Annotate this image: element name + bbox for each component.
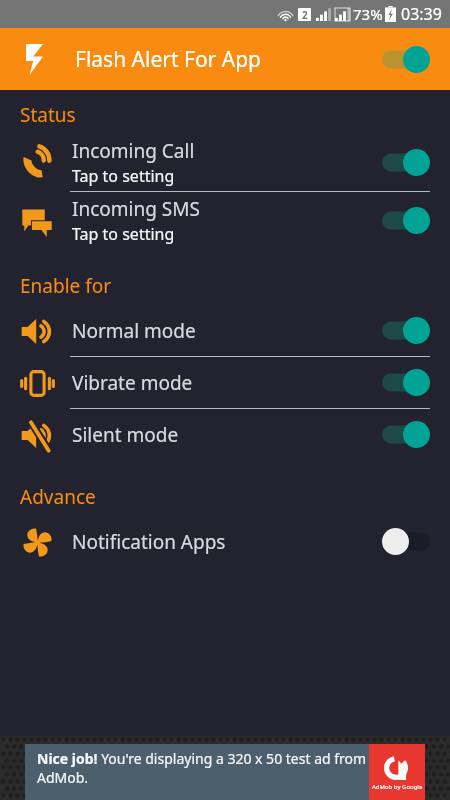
button[interactable]: Silent mode toggle [376, 413, 436, 456]
button[interactable]: Incoming SMS [0, 192, 450, 249]
button[interactable]: Incoming SMS toggle [376, 199, 436, 242]
button[interactable]: Enable flash alert [376, 38, 436, 81]
staticText: Nice job! You're displaying a 320 x 50 t… [37, 749, 369, 787]
staticText: Silent mode [72, 422, 179, 448]
staticText: 2 [302, 8, 308, 21]
button[interactable]: Vibrate mode [0, 357, 450, 408]
button[interactable]: Incoming Call toggle [376, 141, 436, 184]
button[interactable]: Normal mode [0, 305, 450, 356]
button[interactable]: Incoming Call [0, 134, 450, 191]
staticText: Normal mode [72, 318, 196, 344]
staticText: 73% [353, 4, 383, 24]
staticText: Status [20, 102, 76, 128]
staticText: Tap to setting [72, 165, 175, 187]
staticText: Vibrate mode [72, 370, 193, 396]
staticText: Flash Alert For App [75, 45, 261, 74]
staticText: Notification Apps [72, 529, 226, 555]
staticText: AdMob by Google [372, 783, 423, 791]
button[interactable]: Normal mode toggle [376, 309, 436, 352]
button[interactable]: Notification Apps [0, 516, 450, 567]
staticText: 03:39 [401, 3, 442, 25]
staticText: Incoming Call [72, 138, 195, 164]
button[interactable]: Advertisement [25, 744, 425, 800]
staticText: Tap to setting [72, 223, 175, 245]
button[interactable]: Silent mode [0, 409, 450, 460]
staticText: Incoming SMS [72, 196, 200, 222]
button[interactable]: Notification Apps toggle [376, 520, 436, 563]
staticText: Advance [20, 484, 96, 510]
button[interactable]: Vibrate mode toggle [376, 361, 436, 404]
staticText: Enable for [20, 273, 112, 299]
